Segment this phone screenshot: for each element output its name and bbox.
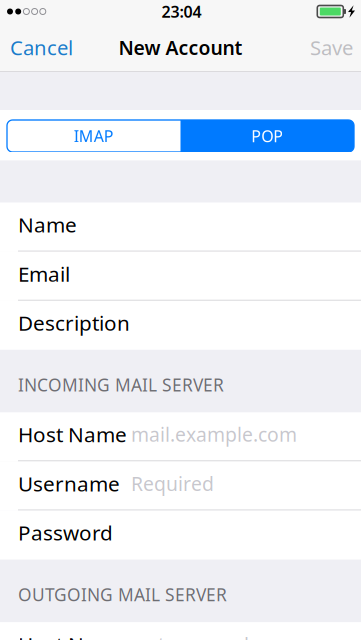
staticText: Cancel bbox=[10, 34, 73, 61]
staticText: Save bbox=[310, 34, 353, 61]
staticText: 23:04 bbox=[162, 1, 202, 22]
button[interactable]: Save bbox=[301, 23, 361, 72]
staticText: IMAP bbox=[74, 125, 114, 147]
staticText: Name bbox=[18, 210, 77, 239]
staticText: New Account bbox=[118, 34, 242, 61]
staticText: Username bbox=[18, 469, 120, 497]
button[interactable]: Password bbox=[0, 510, 361, 560]
staticText: Email bbox=[18, 260, 70, 288]
button[interactable]: Cancel bbox=[0, 23, 82, 72]
staticText: Host Name bbox=[18, 630, 127, 640]
button[interactable]: IMAP bbox=[7, 120, 180, 152]
button[interactable]: Name bbox=[0, 202, 361, 252]
button[interactable]: Email bbox=[0, 252, 361, 301]
staticText: Required bbox=[131, 470, 214, 497]
staticText: OUTGOING MAIL SERVER bbox=[18, 583, 227, 606]
staticText: INCOMING MAIL SERVER bbox=[18, 373, 224, 396]
button[interactable]: Host Name bbox=[0, 412, 361, 461]
staticText: Password bbox=[18, 518, 113, 547]
button[interactable]: Username bbox=[0, 461, 361, 510]
staticText: POP bbox=[251, 125, 283, 147]
staticText: mail.example.com bbox=[131, 421, 297, 447]
staticText: smtp.example.com bbox=[131, 631, 304, 640]
staticText: Description bbox=[18, 309, 130, 337]
button[interactable]: Description bbox=[0, 301, 361, 350]
staticText: Host Name bbox=[18, 420, 127, 448]
button[interactable]: POP bbox=[180, 120, 354, 152]
button[interactable]: Host Name bbox=[0, 622, 361, 640]
